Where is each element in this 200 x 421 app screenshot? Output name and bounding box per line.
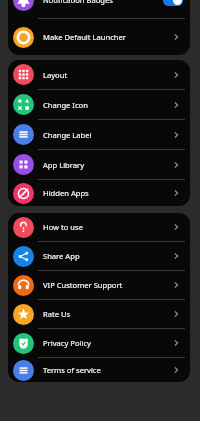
staticText: Layout	[43, 70, 172, 80]
button[interactable]: VIP Customer Support	[8, 271, 190, 299]
button[interactable]: Toggle Notification Badges	[163, 0, 183, 6]
staticText: Notification Badges	[43, 0, 163, 5]
staticText: App Library	[43, 160, 172, 170]
button[interactable]: How to use	[8, 213, 190, 241]
button[interactable]: Hidden Apps	[8, 180, 190, 206]
button[interactable]: App Library	[8, 150, 190, 179]
staticText: Hidden Apps	[43, 188, 172, 198]
staticText: How to use	[43, 222, 172, 232]
button[interactable]: Change Icon	[8, 90, 190, 119]
button[interactable]: Terms of service	[8, 358, 190, 382]
button[interactable]: Share App	[8, 242, 190, 270]
staticText: VIP Customer Support	[43, 280, 172, 290]
staticText: Terms of service	[43, 365, 172, 375]
staticText: Make Default Launcher	[43, 32, 172, 42]
button[interactable]: Change Label	[8, 120, 190, 149]
staticText: Change Icon	[43, 100, 172, 110]
staticText: Rate Us	[43, 309, 172, 319]
staticText: Share App	[43, 251, 172, 261]
staticText: Change Label	[43, 130, 172, 140]
staticText: Privacy Policy	[43, 338, 172, 348]
button[interactable]: Notification Badges	[8, 0, 190, 18]
button[interactable]: Rate Us	[8, 300, 190, 328]
button[interactable]: Make Default Launcher	[8, 19, 190, 55]
button[interactable]: Privacy Policy	[8, 329, 190, 357]
button[interactable]: Layout	[8, 60, 190, 89]
